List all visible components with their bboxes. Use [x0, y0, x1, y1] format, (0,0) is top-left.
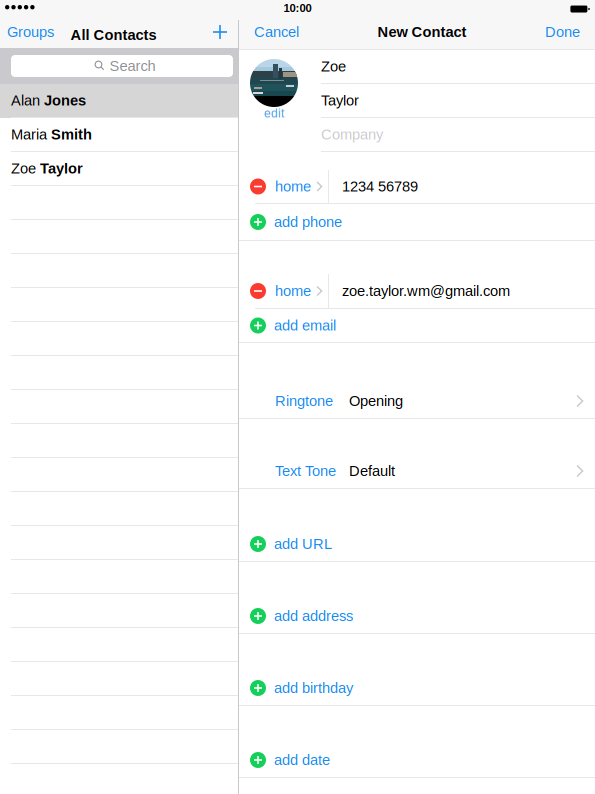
staticText: 10:00	[283, 2, 311, 14]
staticText: Done	[545, 24, 580, 40]
button[interactable]: Cancel	[239, 20, 299, 44]
button[interactable]: Edit photo	[264, 107, 284, 120]
staticText: Taylor	[321, 92, 359, 109]
staticText: Alan Jones	[11, 92, 86, 108]
staticText: edit	[264, 107, 284, 120]
button[interactable]: Ringtone	[239, 384, 595, 419]
staticText: Maria Smith	[11, 126, 92, 142]
staticText: Cancel	[254, 24, 299, 40]
button[interactable]: Alan Jones	[0, 84, 238, 118]
staticText: Search	[109, 58, 155, 74]
staticText: add birthday	[274, 680, 353, 696]
button[interactable]: Done	[545, 20, 595, 44]
button[interactable]: add address	[239, 599, 595, 634]
staticText: add URL	[274, 536, 332, 552]
button[interactable]: Maria Smith	[0, 118, 238, 152]
staticText: Default	[349, 463, 395, 479]
staticText: add email	[274, 317, 336, 334]
button[interactable]: home	[239, 170, 595, 204]
staticText: Zoe Taylor	[11, 160, 83, 176]
staticText: home	[275, 283, 311, 299]
staticText: Text Tone	[275, 463, 336, 479]
staticText: New Contact	[377, 24, 466, 40]
button[interactable]: add birthday	[239, 671, 595, 706]
staticText: Zoe	[321, 58, 346, 75]
staticText: add date	[274, 752, 330, 768]
button[interactable]: add URL	[239, 527, 595, 562]
button[interactable]: Groups	[0, 20, 60, 44]
staticText: zoe.taylor.wm@gmail.com	[342, 283, 510, 299]
staticText: All Contacts	[70, 27, 156, 43]
staticText: Opening	[349, 393, 403, 409]
staticText: home	[275, 178, 311, 195]
button[interactable]: home	[239, 274, 595, 309]
button[interactable]: add email	[239, 309, 595, 343]
button[interactable]: add phone	[239, 204, 595, 241]
staticText: Groups	[7, 24, 54, 40]
button[interactable]: Zoe Taylor	[0, 152, 238, 186]
staticText: add address	[274, 608, 353, 624]
staticText: add phone	[274, 214, 342, 230]
staticText: Company	[321, 126, 383, 143]
button[interactable]: Add contact	[167, 20, 238, 44]
staticText: 1234 56789	[342, 178, 418, 195]
button[interactable]: add date	[239, 743, 595, 778]
button[interactable]: Text Tone	[239, 454, 595, 489]
staticText: Ringtone	[275, 393, 333, 409]
